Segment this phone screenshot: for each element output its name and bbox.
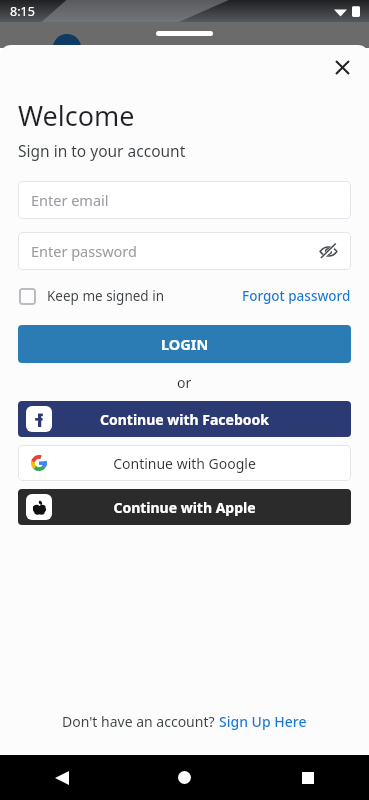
staticText: Forgot password xyxy=(242,287,351,305)
button[interactable]: Recent apps xyxy=(246,755,369,800)
button[interactable]: Close xyxy=(327,52,357,82)
staticText: LOGIN xyxy=(161,334,209,354)
button[interactable]: Show password xyxy=(315,238,341,264)
button[interactable]: Home xyxy=(123,755,246,800)
button[interactable]: Enter email xyxy=(18,181,351,219)
staticText: Continue with Apple xyxy=(113,498,256,517)
button[interactable]: Sign Up Here xyxy=(219,712,307,731)
button[interactable]: Enter password xyxy=(18,232,351,270)
staticText: Continue with Facebook xyxy=(100,410,269,429)
button[interactable]: Continue with Apple xyxy=(18,489,351,525)
button[interactable]: Keep me signed in xyxy=(18,283,165,309)
staticText: Don't have an account? xyxy=(62,712,219,731)
staticText: Enter password xyxy=(31,241,137,261)
staticText: Welcome xyxy=(18,97,135,134)
staticText: Continue with Google xyxy=(113,454,256,473)
staticText: or xyxy=(177,373,192,392)
button[interactable]: LOGIN xyxy=(18,325,351,363)
staticText: 8:15 xyxy=(10,3,35,20)
button[interactable]: Back xyxy=(0,755,123,800)
staticText: Sign in to your account xyxy=(18,140,186,161)
staticText: Enter email xyxy=(31,190,109,210)
staticText: Sign Up Here xyxy=(219,712,307,731)
button[interactable]: Forgot password xyxy=(242,283,351,309)
button[interactable]: Continue with Google xyxy=(18,445,351,481)
button[interactable]: Continue with Facebook xyxy=(18,401,351,437)
staticText: Keep me signed in xyxy=(47,287,164,305)
